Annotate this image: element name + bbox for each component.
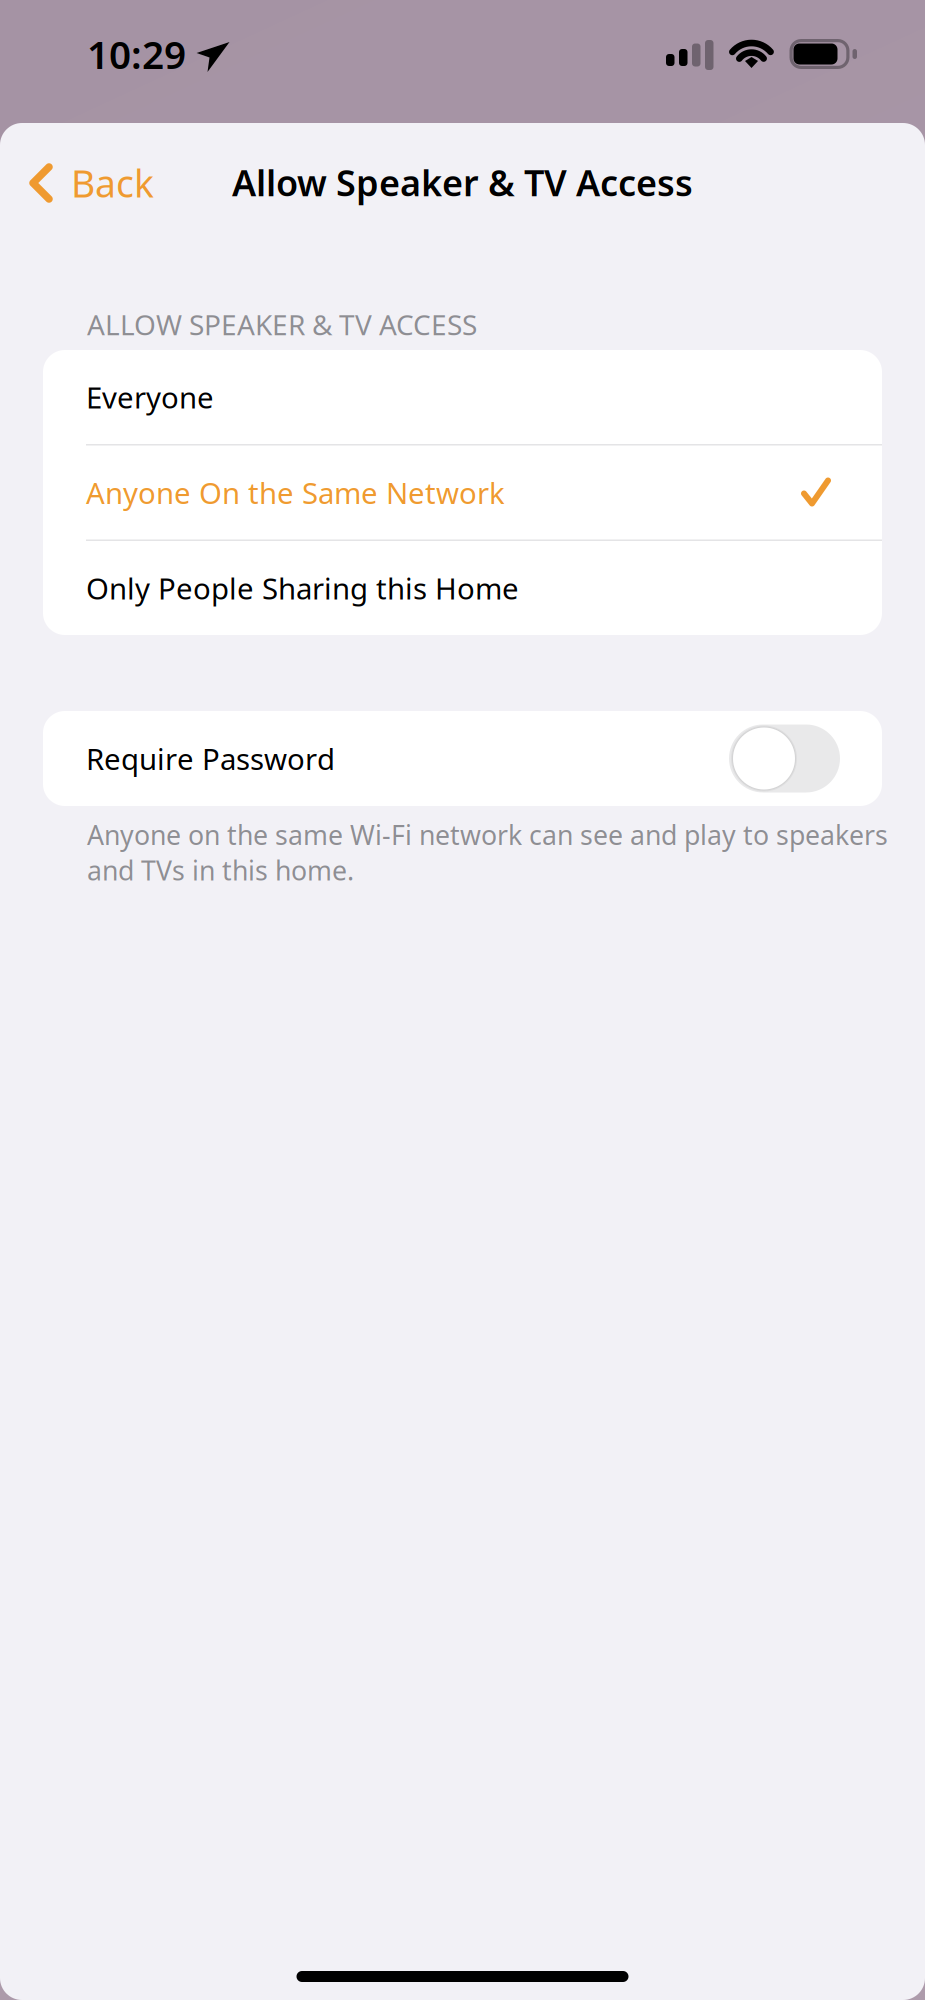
staticText: Only People Sharing this Home xyxy=(86,568,519,607)
staticText: ALLOW SPEAKER & TV ACCESS xyxy=(87,306,477,343)
button[interactable]: Everyone xyxy=(43,350,882,444)
staticText: 10:29 xyxy=(87,28,186,80)
button[interactable]: Only People Sharing this Home xyxy=(43,541,882,635)
staticText: Back xyxy=(71,158,154,208)
button[interactable]: Require Password xyxy=(729,724,840,792)
button[interactable]: Anyone On the Same Network xyxy=(43,445,882,539)
button[interactable]: Back xyxy=(0,142,174,224)
staticText: Anyone On the Same Network xyxy=(86,473,505,512)
staticText: Allow Speaker & TV Access xyxy=(232,158,693,206)
staticText: Require Password xyxy=(86,739,335,778)
staticText: Anyone on the same Wi-Fi network can see… xyxy=(87,817,888,888)
staticText: Everyone xyxy=(86,377,214,416)
